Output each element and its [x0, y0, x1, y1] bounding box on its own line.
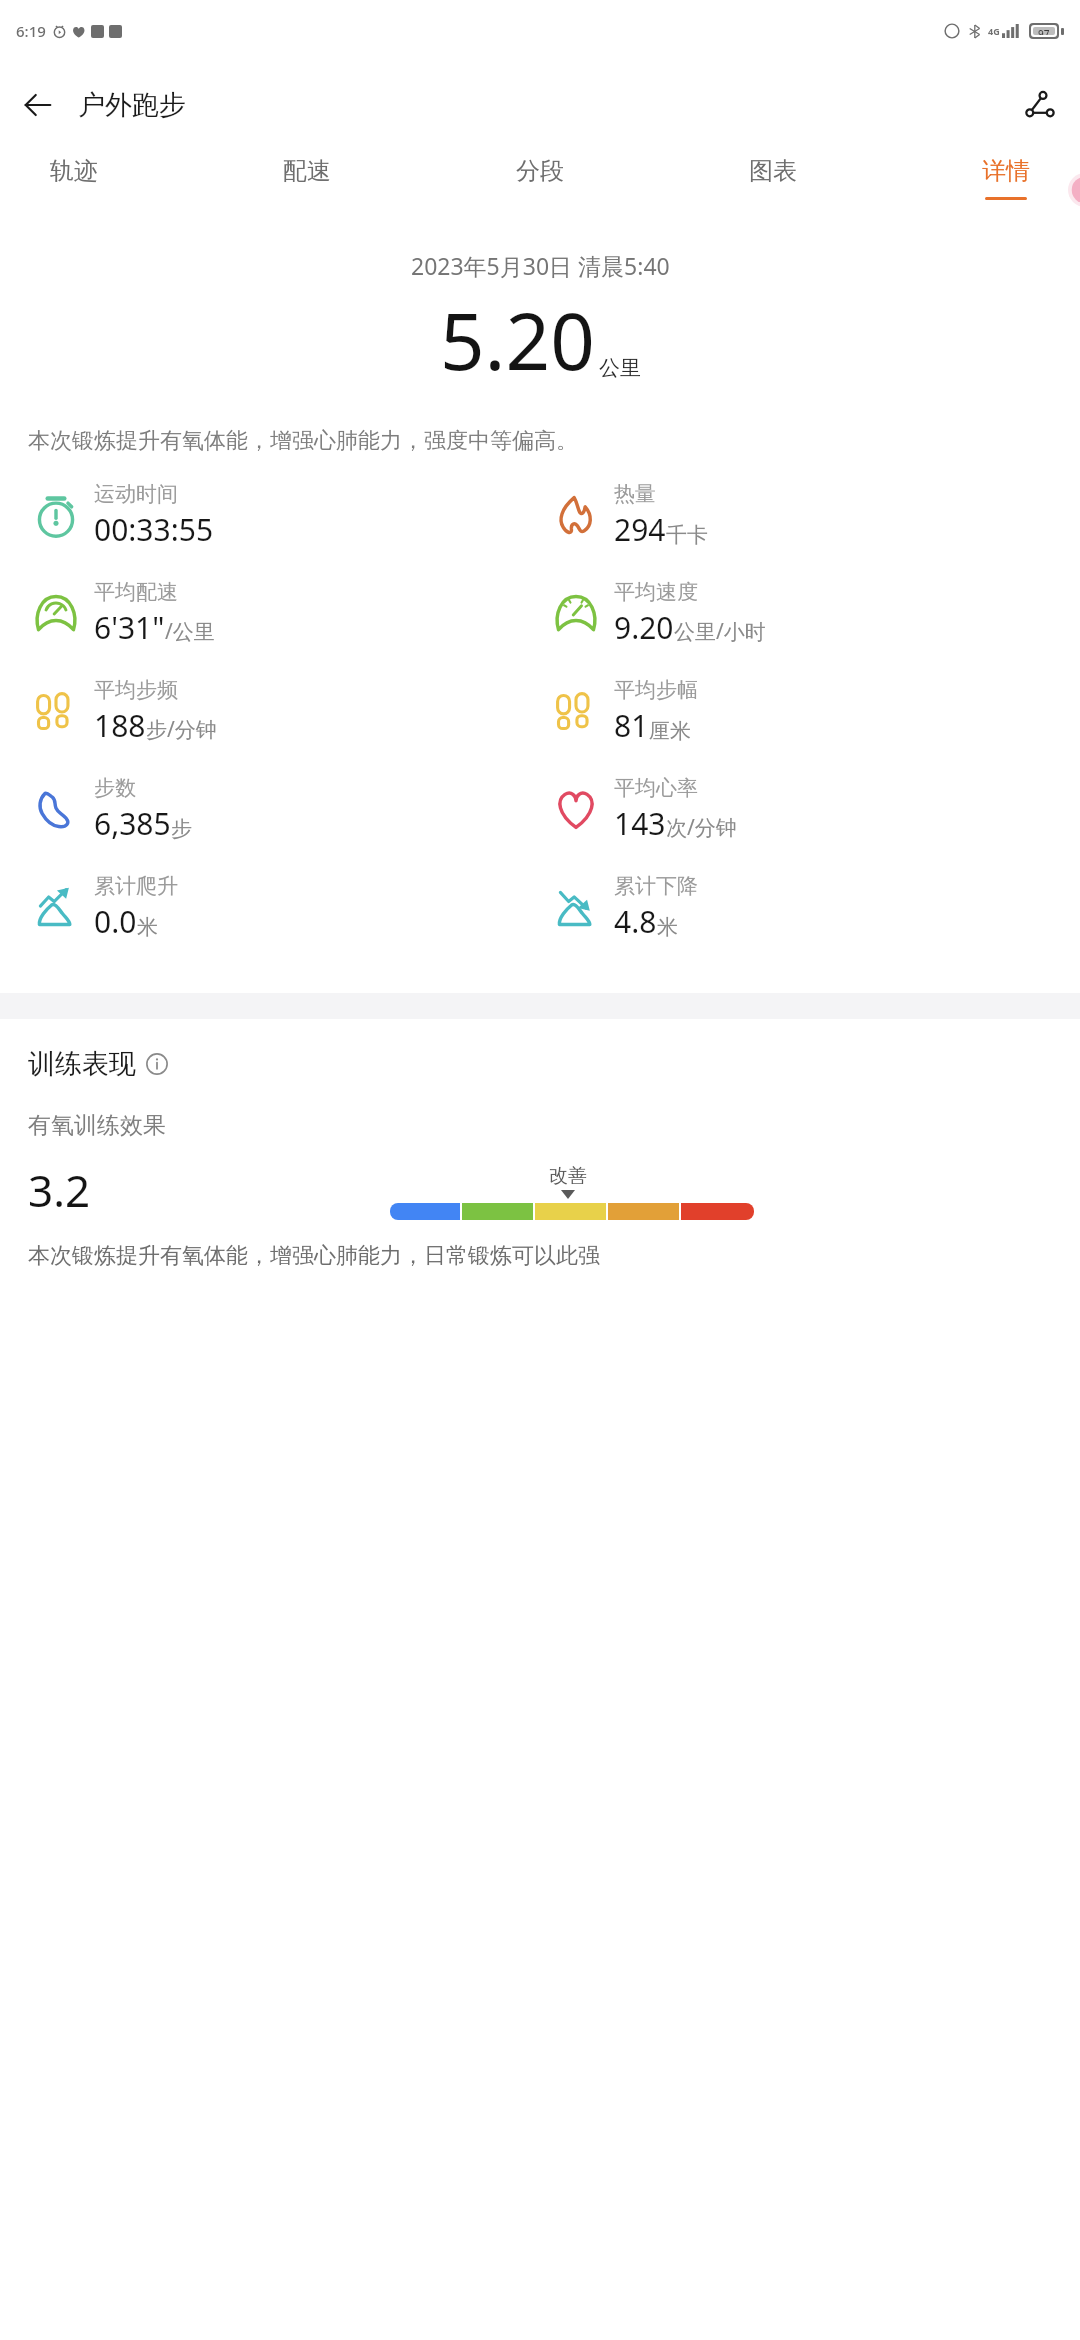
staticText: 训练表现: [28, 1047, 136, 1081]
staticText: 97: [1038, 27, 1050, 35]
staticText: 4G: [988, 25, 1000, 37]
staticText: 0.0: [94, 901, 137, 942]
staticText: 累计爬升: [94, 873, 178, 899]
staticText: 6,385: [94, 803, 171, 844]
staticText: 累计下降: [614, 873, 698, 899]
staticText: 9.20: [614, 607, 674, 648]
button[interactable]: 累计爬升: [28, 873, 540, 971]
button[interactable]: 平均心率: [548, 775, 1080, 873]
staticText: 平均心率: [614, 775, 698, 801]
staticText: 户外跑步: [78, 88, 186, 122]
staticText: 平均步幅: [614, 677, 698, 703]
button[interactable]: 分段: [510, 148, 570, 208]
button[interactable]: 详情: [976, 148, 1036, 208]
staticText: 详情: [982, 156, 1030, 186]
staticText: 2023年5月30日 清晨5:40: [411, 250, 670, 281]
staticText: 平均步频: [94, 677, 178, 703]
staticText: 步: [171, 816, 192, 842]
staticText: 米: [657, 914, 678, 940]
staticText: 步数: [94, 775, 136, 801]
staticText: 3.2: [28, 1160, 91, 1220]
staticText: 6:19: [16, 21, 46, 41]
staticText: 次/分钟: [666, 813, 737, 842]
button[interactable]: Share: [1014, 79, 1066, 131]
staticText: 6'31": [94, 607, 165, 648]
button[interactable]: 配速: [277, 148, 337, 208]
button[interactable]: 步数: [28, 775, 540, 873]
staticText: 143: [614, 803, 666, 844]
staticText: 平均配速: [94, 579, 178, 605]
button[interactable]: 运动时间: [28, 481, 540, 579]
staticText: 改善: [549, 1164, 587, 1188]
staticText: 294: [614, 509, 666, 550]
button[interactable]: 平均配速: [28, 579, 540, 677]
staticText: 本次锻炼提升有氧体能，增强心肺能力，强度中等偏高。: [28, 427, 1052, 455]
staticText: 运动时间: [94, 481, 178, 507]
other: Info: [146, 1053, 168, 1075]
button[interactable]: Back: [12, 79, 64, 131]
button[interactable]: 热量: [548, 481, 1080, 579]
button[interactable]: 平均步幅: [548, 677, 1080, 775]
staticText: 公里: [599, 355, 641, 381]
staticText: 热量: [614, 481, 656, 507]
button[interactable]: 平均速度: [548, 579, 1080, 677]
staticText: 厘米: [649, 718, 691, 744]
staticText: 00:33:55: [94, 509, 214, 550]
button[interactable]: 平均步频: [28, 677, 540, 775]
staticText: 有氧训练效果: [28, 1111, 166, 1140]
staticText: 轨迹: [50, 156, 98, 186]
staticText: 配速: [283, 156, 331, 186]
staticText: 公里/小时: [674, 617, 766, 646]
staticText: 图表: [749, 156, 797, 186]
staticText: 步/分钟: [146, 715, 217, 744]
staticText: 千卡: [666, 522, 708, 548]
staticText: /公里: [165, 617, 215, 646]
staticText: 4.8: [614, 901, 657, 942]
staticText: 5.20: [440, 287, 595, 393]
button[interactable]: 轨迹: [44, 148, 104, 208]
staticText: 81: [614, 705, 649, 746]
staticText: 分段: [516, 156, 564, 186]
staticText: 米: [137, 914, 158, 940]
button[interactable]: 累计下降: [548, 873, 1080, 971]
staticText: 188: [94, 705, 146, 746]
button[interactable]: 训练表现: [28, 1047, 168, 1081]
button[interactable]: 图表: [743, 148, 803, 208]
staticText: 平均速度: [614, 579, 698, 605]
staticText: 本次锻炼提升有氧体能，增强心肺能力，日常锻炼可以此强: [28, 1242, 600, 1270]
